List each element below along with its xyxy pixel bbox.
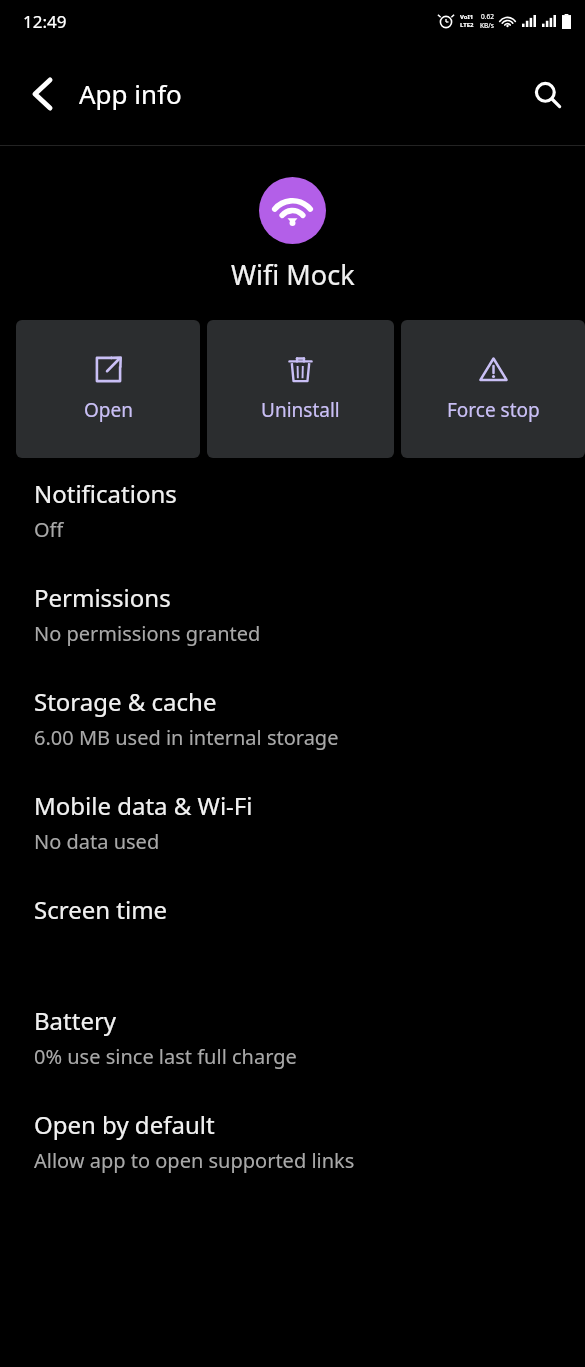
staticText: Open by default [34, 1108, 215, 1141]
staticText: Mobile data & Wi-Fi [34, 789, 253, 822]
staticText: Screen time [34, 893, 168, 926]
staticText: No permissions granted [34, 620, 261, 647]
button[interactable]: Open by default [0, 1108, 585, 1174]
staticText: Open [84, 397, 133, 423]
button[interactable]: Force stop [401, 320, 585, 458]
staticText: Permissions [34, 581, 171, 614]
staticText: Storage & cache [34, 685, 217, 718]
button[interactable]: Screen time [0, 893, 585, 926]
staticText: Off [34, 516, 64, 543]
button[interactable]: Permissions [0, 581, 585, 647]
staticText: Uninstall [261, 397, 340, 423]
button[interactable]: Battery [0, 1004, 585, 1070]
button[interactable]: Open [16, 320, 200, 458]
staticText: 6.00 MB used in internal storage [34, 724, 339, 751]
staticText: Wifi Mock [231, 256, 355, 293]
staticText: App info [79, 76, 182, 111]
button[interactable]: Back [18, 70, 66, 118]
staticText: Notifications [34, 477, 177, 510]
staticText: KB/s [480, 21, 494, 30]
staticText: LTE2 [460, 21, 474, 29]
staticText: 12:49 [23, 10, 67, 33]
staticText: Force stop [447, 397, 540, 423]
staticText: VoI1 [460, 13, 474, 21]
button[interactable]: Storage & cache [0, 685, 585, 751]
staticText: 0.62 [481, 12, 494, 21]
button[interactable]: Uninstall [207, 320, 394, 458]
button[interactable]: Mobile data & Wi-Fi [0, 789, 585, 855]
staticText: Battery [34, 1004, 117, 1037]
staticText: Allow app to open supported links [34, 1147, 355, 1174]
staticText: 0% use since last full charge [34, 1043, 297, 1070]
button[interactable]: Search [523, 70, 571, 118]
button[interactable]: Notifications [0, 477, 585, 543]
staticText: No data used [34, 828, 160, 855]
